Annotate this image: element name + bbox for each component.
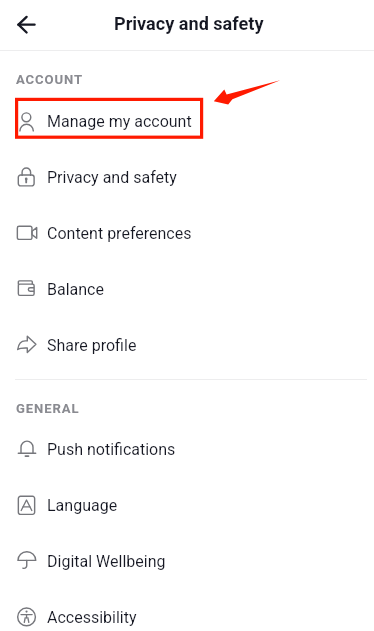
staticText: Manage my account <box>47 112 192 131</box>
button[interactable]: Content preferences <box>0 205 374 261</box>
staticText: Digital Wellbeing <box>47 552 166 571</box>
staticText: Balance <box>47 280 104 299</box>
button[interactable]: Back <box>5 5 47 47</box>
staticText: Content preferences <box>47 224 192 243</box>
staticText: GENERAL <box>16 401 80 416</box>
staticText: ACCOUNT <box>16 72 83 87</box>
staticText: Language <box>47 496 118 515</box>
staticText: Push notifications <box>47 440 176 459</box>
button[interactable]: Accessibility <box>0 589 374 631</box>
button[interactable]: Share profile <box>0 317 374 373</box>
button[interactable]: Manage my account <box>0 93 374 149</box>
button[interactable]: Digital Wellbeing <box>0 533 374 589</box>
staticText: Privacy and safety <box>47 168 177 187</box>
button[interactable]: Privacy and safety <box>0 149 374 205</box>
staticText: Share profile <box>47 336 137 355</box>
button[interactable]: Push notifications <box>0 421 374 477</box>
button[interactable]: Balance <box>0 261 374 317</box>
button[interactable]: Language <box>0 477 374 533</box>
staticText: Accessibility <box>47 608 137 627</box>
staticText: Privacy and safety <box>114 13 264 34</box>
